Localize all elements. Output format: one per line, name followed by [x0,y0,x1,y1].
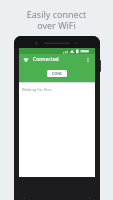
staticText: DONE [52,71,62,76]
button[interactable]: WiFi connection [22,56,30,64]
staticText: Waiting for files [22,87,52,92]
staticText: Connected [33,56,59,63]
staticText: Easily connect over WiFi [0,8,113,31]
button[interactable]: More options [84,56,92,64]
button[interactable]: Waiting for files [19,86,95,93]
button[interactable]: DONE [47,70,67,77]
